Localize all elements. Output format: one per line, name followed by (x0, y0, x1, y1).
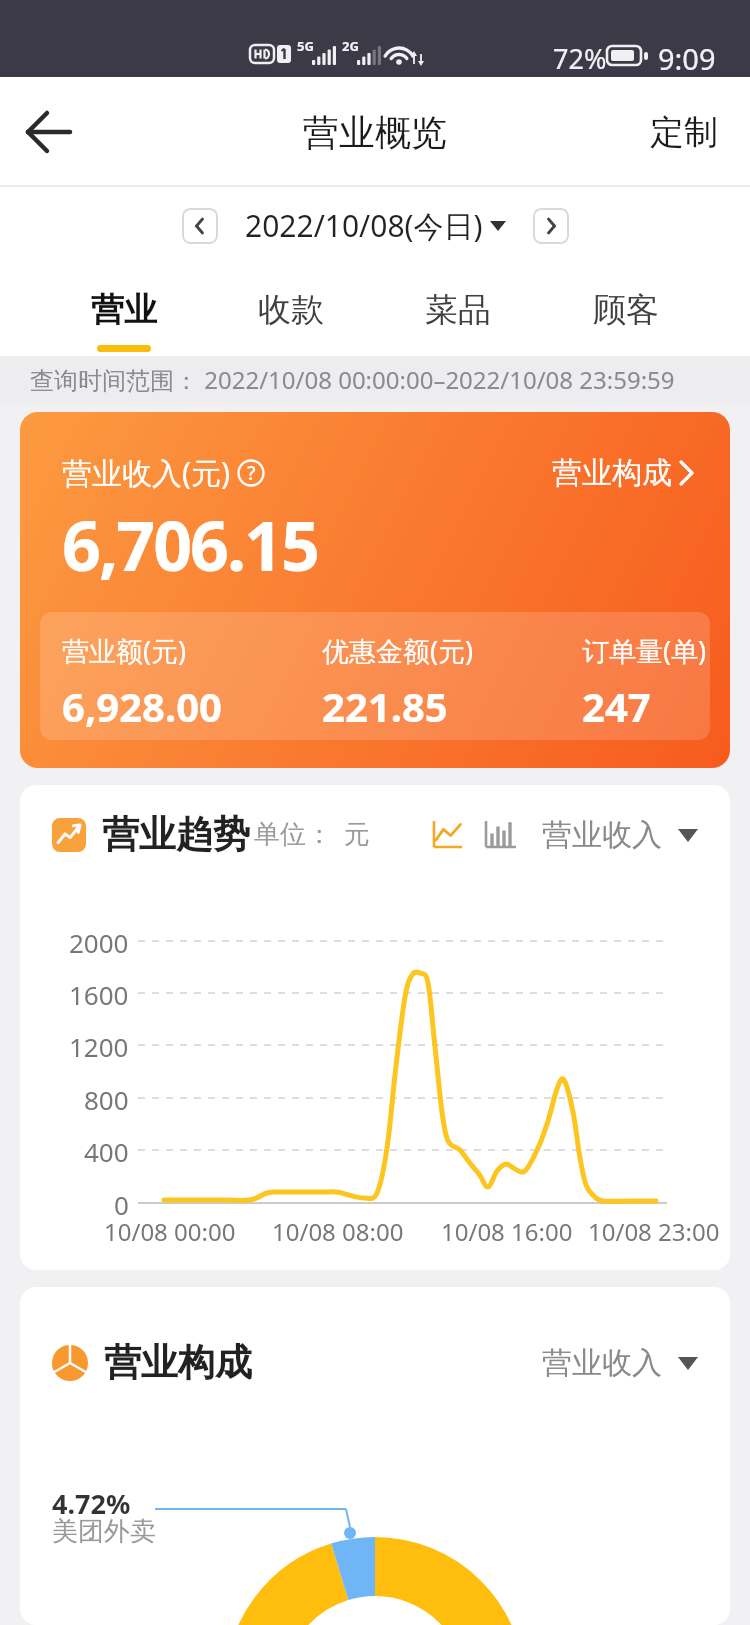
staticText: 营业概览 (303, 110, 447, 155)
button[interactable] (20, 104, 76, 160)
staticText: 营业构成 (104, 1339, 252, 1386)
staticText: 9:09 (658, 39, 716, 78)
staticText: 收款 (258, 289, 324, 331)
staticText: 订单量(单) (582, 632, 707, 669)
staticText: 247 (582, 679, 651, 733)
staticText: 6,928.00 (62, 679, 222, 733)
staticText: 10/08 23:00 (588, 1215, 720, 1248)
staticText: 单位： (254, 818, 332, 851)
staticText: 美团外卖 (52, 1515, 156, 1548)
staticText: 菜品 (425, 289, 491, 331)
staticText: 查询时间范围： 2022/10/08 00:00:00–2022/10/08 2… (30, 363, 675, 396)
button[interactable]: 收款 (207, 264, 374, 356)
staticText: 400 (84, 1134, 129, 1169)
staticText: 营业收入(元) (62, 452, 230, 493)
staticText: 2022/10/08(今日) (245, 205, 483, 246)
staticText: 6,706.15 (62, 498, 318, 591)
staticText: 10/08 00:00 (104, 1215, 236, 1248)
staticText: 营业构成 (552, 454, 672, 492)
button[interactable] (533, 208, 569, 244)
button[interactable]: 营业构成 (552, 454, 694, 492)
staticText: ? (247, 460, 256, 486)
staticText: 营业收入 (542, 816, 662, 854)
staticText: 1200 (69, 1029, 129, 1064)
staticText: 4.72% (52, 1485, 131, 1522)
staticText: 10/08 16:00 (441, 1215, 573, 1248)
staticText: 营业趋势 (102, 811, 250, 858)
staticText: 元 (344, 818, 370, 851)
button[interactable]: 2022/10/08(今日) (245, 205, 506, 246)
button[interactable] (432, 821, 462, 849)
button[interactable] (182, 208, 218, 244)
button[interactable] (484, 821, 516, 849)
staticText: 2000 (69, 925, 129, 960)
staticText: 顾客 (593, 289, 659, 331)
staticText: 营业额(元) (62, 632, 187, 669)
staticText: 1600 (69, 977, 129, 1012)
staticText: 72% (553, 40, 607, 77)
button[interactable]: 营业 (40, 264, 207, 356)
button[interactable]: 菜品 (374, 264, 542, 356)
staticText: 2G (342, 37, 359, 55)
button[interactable]: 营业收入 (542, 816, 698, 854)
staticText: 定制 (650, 111, 718, 154)
button[interactable]: 顾客 (542, 264, 710, 356)
staticText: 营业 (91, 289, 157, 331)
staticText: 10/08 08:00 (272, 1215, 404, 1248)
button[interactable]: 营业收入 (542, 1344, 698, 1382)
staticText: 800 (84, 1082, 129, 1117)
staticText: 5G (297, 37, 314, 55)
staticText: 221.85 (322, 679, 448, 733)
staticText: 优惠金额(元) (322, 632, 474, 669)
staticText: 0 (114, 1187, 129, 1222)
staticText: 营业收入 (542, 1344, 662, 1382)
button[interactable]: 定制 (650, 111, 750, 154)
